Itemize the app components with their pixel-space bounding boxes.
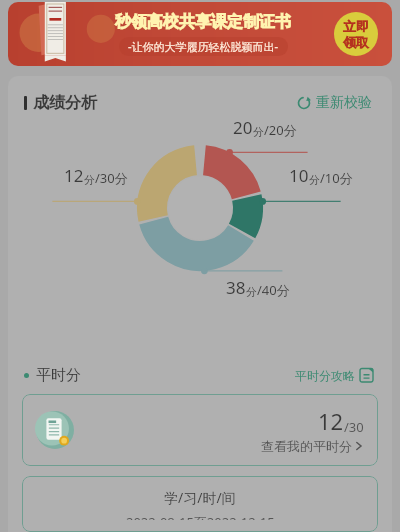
staticText: 学/习/时/间 xyxy=(164,488,236,507)
staticText: 成绩分析 xyxy=(33,93,97,113)
staticText: /30分 xyxy=(95,169,128,187)
staticText: 分 xyxy=(309,173,320,187)
staticText: 见面课 xyxy=(233,142,392,156)
staticText: 平时分攻略 xyxy=(295,368,355,383)
staticText: 分 xyxy=(84,173,95,187)
button[interactable]: 秒领高校共享课定制证书 xyxy=(8,2,392,66)
button[interactable]: 立即 xyxy=(334,12,378,56)
staticText: 重新校验 xyxy=(316,94,372,112)
staticText: 立即 xyxy=(343,18,369,34)
staticText: 平时分 xyxy=(64,190,392,204)
staticText: 平时分 xyxy=(36,366,81,385)
staticText: 10 xyxy=(289,164,309,187)
staticText: 2022-08-15至2022-12-15 xyxy=(126,513,275,520)
staticText: 查看我的平时分 xyxy=(261,438,352,454)
button[interactable]: 平时分攻略 xyxy=(293,366,376,385)
staticText: /30 xyxy=(344,418,364,436)
staticText: -让你的大学履历轻松脱颖而出- xyxy=(128,39,279,54)
staticText: /10分 xyxy=(320,169,353,187)
button[interactable]: 12 xyxy=(22,394,378,466)
staticText: 领取 xyxy=(343,34,369,50)
staticText: 分 xyxy=(246,285,257,299)
staticText: 秒领高校共享课定制证书 xyxy=(115,12,291,32)
staticText: 分 xyxy=(253,125,264,139)
staticText: 38 xyxy=(226,276,246,299)
staticText: 12 xyxy=(64,164,84,187)
other: 攻略文档 xyxy=(359,368,374,383)
button[interactable]: 重新校验 xyxy=(293,90,376,116)
staticText: 20 xyxy=(233,116,253,139)
staticText: 12 xyxy=(318,406,344,436)
staticText: 平时测试 xyxy=(289,190,392,204)
staticText: /20分 xyxy=(264,121,297,139)
staticText: /40分 xyxy=(257,281,290,299)
